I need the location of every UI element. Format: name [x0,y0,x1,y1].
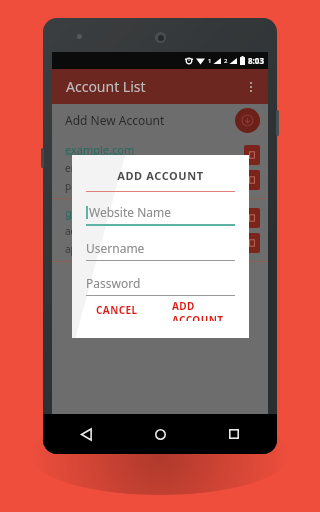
staticText: Add New Account [65,112,165,128]
button[interactable]: Edit [244,233,260,253]
staticText: 8:03 [248,55,264,66]
staticText: Account List [66,77,146,96]
button[interactable]: CANCEL [92,300,142,320]
button[interactable]: google.com [52,199,268,261]
button[interactable]: ADD ACCOUNT [168,296,235,324]
staticText: Website Name [89,204,171,220]
staticText: 2 [224,57,228,65]
button[interactable]: Home [147,421,173,447]
button[interactable]: Back [73,421,99,447]
button[interactable]: Recents [221,421,247,447]
staticText: appassword [65,242,123,256]
button[interactable]: More options [240,76,262,98]
staticText: email@example.com [65,161,163,175]
staticText: ADD ACCOUNT [86,168,235,183]
staticText: CANCEL [96,303,138,317]
staticText: ADD ACCOUNT [172,299,231,321]
staticText: Username [86,240,145,256]
staticText: google.com [65,205,127,220]
staticText: 1 [208,57,212,65]
button[interactable]: example.com [52,136,268,198]
button[interactable]: Copy [244,145,260,165]
staticText: example.com [65,142,135,157]
staticText: account@gmail.com [65,224,161,238]
button[interactable]: Copy [244,208,260,228]
button[interactable]: Edit [244,170,260,190]
staticText: Password [86,275,141,291]
button[interactable]: Add account [235,108,260,133]
staticText: password [65,179,111,193]
